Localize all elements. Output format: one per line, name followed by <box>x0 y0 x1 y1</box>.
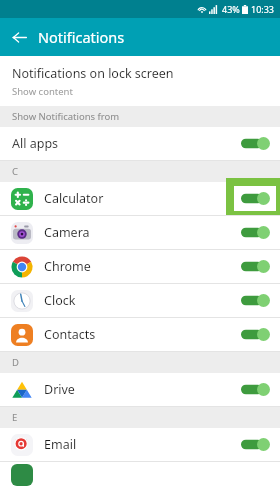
button[interactable]: Toggle Calculator notifications <box>230 182 280 215</box>
staticText: Drive <box>44 381 75 398</box>
button[interactable]: Email <box>0 428 280 461</box>
staticText: C <box>12 165 19 178</box>
staticText: Clock <box>44 292 76 309</box>
button[interactable]: Toggle Camera notifications <box>230 216 280 249</box>
button[interactable]: Toggle Clock notifications <box>230 284 280 317</box>
staticText: Contacts <box>44 326 96 343</box>
staticText: Email <box>44 436 77 453</box>
staticText: E <box>12 411 18 424</box>
button[interactable]: Notifications on lock screen <box>0 56 280 106</box>
button[interactable]: Contacts <box>0 318 280 351</box>
staticText: Chrome <box>44 258 91 275</box>
button[interactable]: Toggle Drive notifications <box>230 373 280 406</box>
staticText: Calculator <box>44 190 104 207</box>
staticText: Show content <box>12 85 73 98</box>
button[interactable]: Drive <box>0 373 280 406</box>
button[interactable]: Toggle All apps notifications <box>230 127 280 160</box>
button[interactable]: Toggle Contacts notifications <box>230 318 280 351</box>
staticText: D <box>12 356 19 369</box>
staticText: Show Notifications from <box>12 110 120 123</box>
staticText: All apps <box>12 135 59 152</box>
button[interactable]: Navigate up <box>0 18 38 56</box>
staticText: 43% <box>222 3 240 15</box>
staticText: Camera <box>44 224 90 241</box>
staticText: 10:33 <box>251 3 275 15</box>
button[interactable]: Toggle Chrome notifications <box>230 250 280 283</box>
staticText: Notifications on lock screen <box>12 65 174 82</box>
button[interactable]: Toggle Email notifications <box>230 428 280 461</box>
button[interactable]: Clock <box>0 284 280 317</box>
button[interactable]: Camera <box>0 216 280 249</box>
button[interactable]: Chrome <box>0 250 280 283</box>
staticText: Notifications <box>38 27 125 47</box>
button[interactable]: Calculator <box>0 182 280 215</box>
button[interactable]: All apps <box>0 127 280 160</box>
